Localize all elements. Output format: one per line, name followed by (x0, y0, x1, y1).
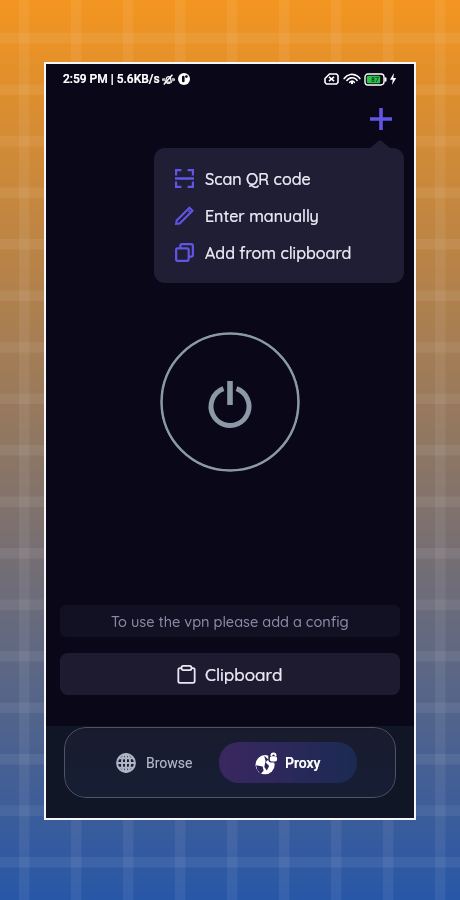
button[interactable]: Clipboard (60, 653, 400, 695)
staticText: Add from clipboard (205, 243, 352, 263)
button[interactable]: Add configuration (362, 100, 400, 138)
staticText: Clipboard (205, 664, 283, 685)
staticText: 2:59 PM | 5.6KB/s (63, 72, 160, 86)
button[interactable]: Add from clipboard (154, 234, 404, 271)
staticText: Proxy (285, 755, 321, 771)
button[interactable]: Proxy (219, 742, 357, 783)
staticText: 87 (371, 76, 380, 84)
staticText: To use the vpn please add a config (111, 612, 349, 630)
button[interactable]: Enter manually (154, 197, 404, 234)
button[interactable]: Browse (86, 742, 223, 783)
staticText: Browse (146, 755, 193, 771)
button[interactable]: Scan QR code (154, 160, 404, 197)
staticText: Enter manually (205, 206, 319, 226)
button[interactable]: Connect (160, 332, 300, 472)
staticText: Scan QR code (205, 169, 311, 189)
